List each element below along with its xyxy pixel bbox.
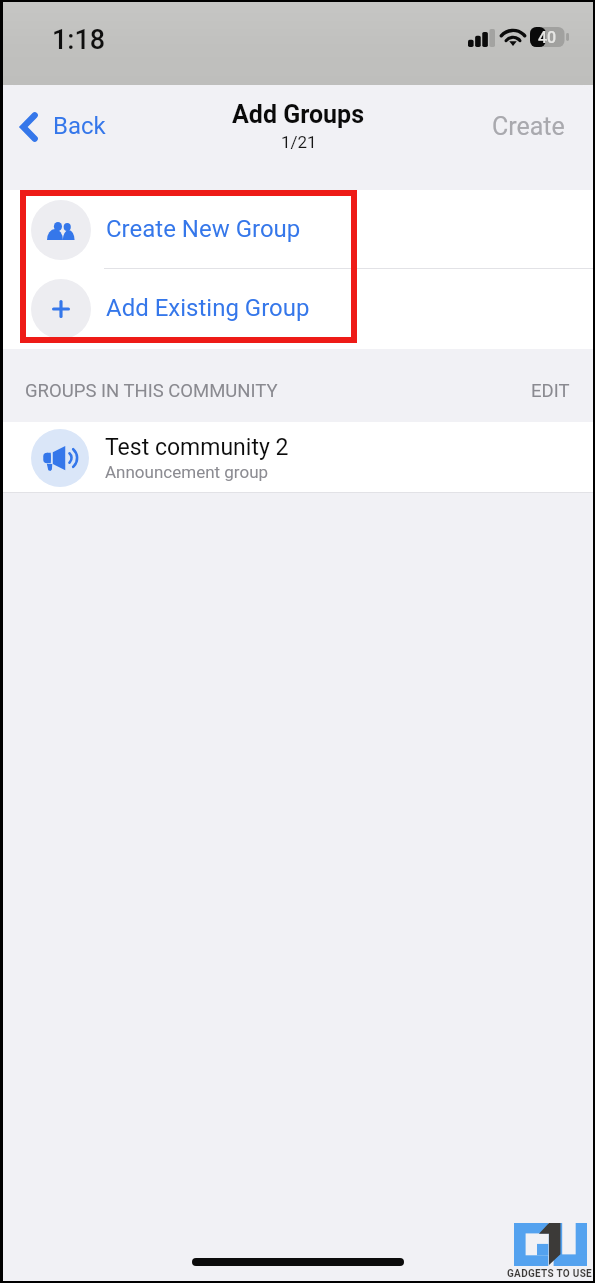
staticText: 1/21 [281,132,317,152]
button[interactable]: EDIT [525,374,576,408]
button[interactable]: Test community 2 [3,422,593,493]
staticText: Test community 2 [105,434,289,461]
staticText: EDIT [531,380,570,402]
button[interactable]: Create New Group [3,190,593,269]
staticText: 40 [538,28,557,47]
staticText: 1:18 [52,24,106,56]
staticText: Create [492,112,565,141]
staticText: Add Groups [232,100,365,129]
staticText: GROUPS IN THIS COMMUNITY [25,380,278,402]
staticText: Announcement group [105,462,269,482]
staticText: Add Existing Group [106,294,310,322]
button[interactable]: Add Existing Group [3,269,593,348]
button[interactable]: Create [484,104,573,151]
staticText: GADGETS TO USE [507,1268,593,1280]
button[interactable]: Back [14,104,113,150]
staticText: Back [53,112,106,140]
staticText: Create New Group [106,215,301,243]
